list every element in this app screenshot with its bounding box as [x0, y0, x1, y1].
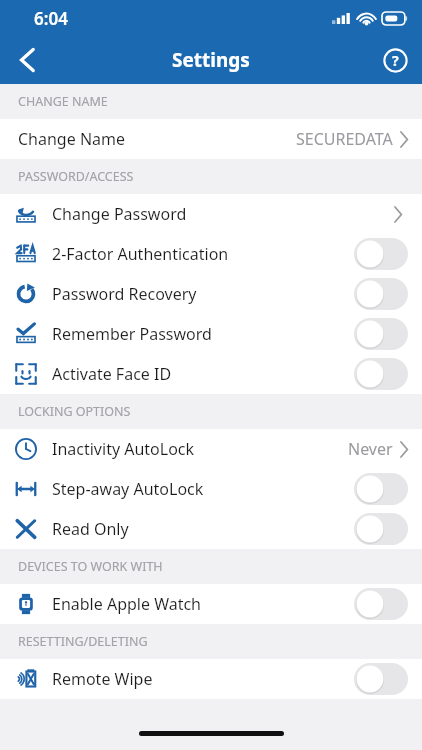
staticText: Settings — [172, 47, 250, 73]
button[interactable]: Password Recovery — [0, 274, 422, 314]
button[interactable]: Back — [0, 36, 54, 84]
staticText: Remember Password — [52, 323, 354, 345]
button[interactable]: 2-Factor Authentication — [0, 234, 422, 274]
staticText: PASSWORD/ACCESS — [18, 168, 134, 185]
button[interactable]: Password Recovery toggle — [354, 278, 408, 310]
staticText: SECUREDATA — [296, 128, 393, 150]
staticText: RESETTING/DELETING — [18, 633, 148, 650]
staticText: 6:04 — [34, 7, 68, 30]
staticText: DEVICES TO WORK WITH — [18, 558, 163, 575]
button[interactable]: 2-Factor Authentication toggle — [354, 238, 408, 270]
button[interactable]: Change Name — [0, 119, 422, 159]
staticText: Remote Wipe — [52, 668, 354, 690]
staticText: Enable Apple Watch — [52, 593, 354, 615]
button[interactable]: Read Only — [0, 509, 422, 549]
staticText: Read Only — [52, 518, 354, 540]
button[interactable]: Step-away AutoLock — [0, 469, 422, 509]
button[interactable]: Enable Apple Watch toggle — [354, 588, 408, 620]
staticText: LOCKING OPTIONS — [18, 403, 131, 420]
button[interactable]: Read Only toggle — [354, 513, 408, 545]
staticText: Never — [348, 438, 393, 460]
button[interactable]: Activate Face ID — [0, 354, 422, 394]
staticText: Activate Face ID — [52, 363, 354, 385]
staticText: ? — [392, 51, 399, 70]
button[interactable]: Step-away AutoLock toggle — [354, 473, 408, 505]
button[interactable]: Inactivity AutoLock — [0, 429, 422, 469]
button[interactable]: Remote Wipe — [0, 659, 422, 699]
button[interactable]: Remote Wipe toggle — [354, 663, 408, 695]
staticText: Password Recovery — [52, 283, 354, 305]
staticText: CHANGE NAME — [18, 93, 108, 110]
staticText: 2-Factor Authentication — [52, 243, 354, 265]
button[interactable]: Change Password — [0, 194, 422, 234]
staticText: Change Name — [18, 128, 296, 150]
button[interactable]: Help — [368, 36, 422, 84]
button[interactable]: Remember Password toggle — [354, 318, 408, 350]
button[interactable]: Remember Password — [0, 314, 422, 354]
button[interactable]: Activate Face ID toggle — [354, 358, 408, 390]
staticText: Step-away AutoLock — [52, 478, 354, 500]
button[interactable]: Enable Apple Watch — [0, 584, 422, 624]
staticText: Change Password — [52, 203, 394, 225]
staticText: Inactivity AutoLock — [52, 438, 348, 460]
